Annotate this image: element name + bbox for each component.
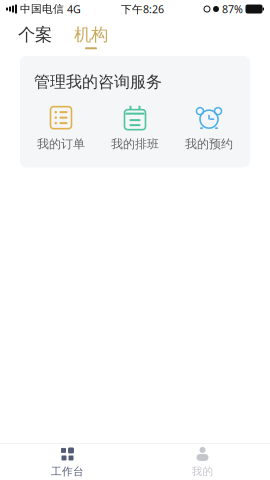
staticText: 管理我的咨询服务	[34, 72, 162, 92]
button[interactable]: 我的	[135, 440, 270, 480]
staticText: 4G	[67, 2, 81, 16]
staticText: 我的排班	[111, 137, 159, 151]
staticText: 工作台	[51, 465, 84, 478]
staticText: 中国电信	[20, 2, 64, 15]
button[interactable]: 工作台	[0, 440, 135, 480]
staticText: 个案	[18, 24, 52, 45]
staticText: 机构	[74, 24, 108, 45]
button[interactable]: 个案	[16, 24, 54, 51]
staticText: 我的预约	[185, 137, 233, 151]
staticText: 我的订单	[37, 137, 85, 151]
staticText: 87%	[222, 2, 243, 16]
button[interactable]: 我的预约	[172, 106, 246, 151]
staticText: 下午8:26	[121, 2, 164, 16]
button[interactable]: 机构	[72, 24, 110, 51]
button[interactable]: 我的订单	[24, 106, 98, 151]
button[interactable]: 我的排班	[98, 106, 172, 151]
staticText: 我的	[191, 465, 213, 478]
